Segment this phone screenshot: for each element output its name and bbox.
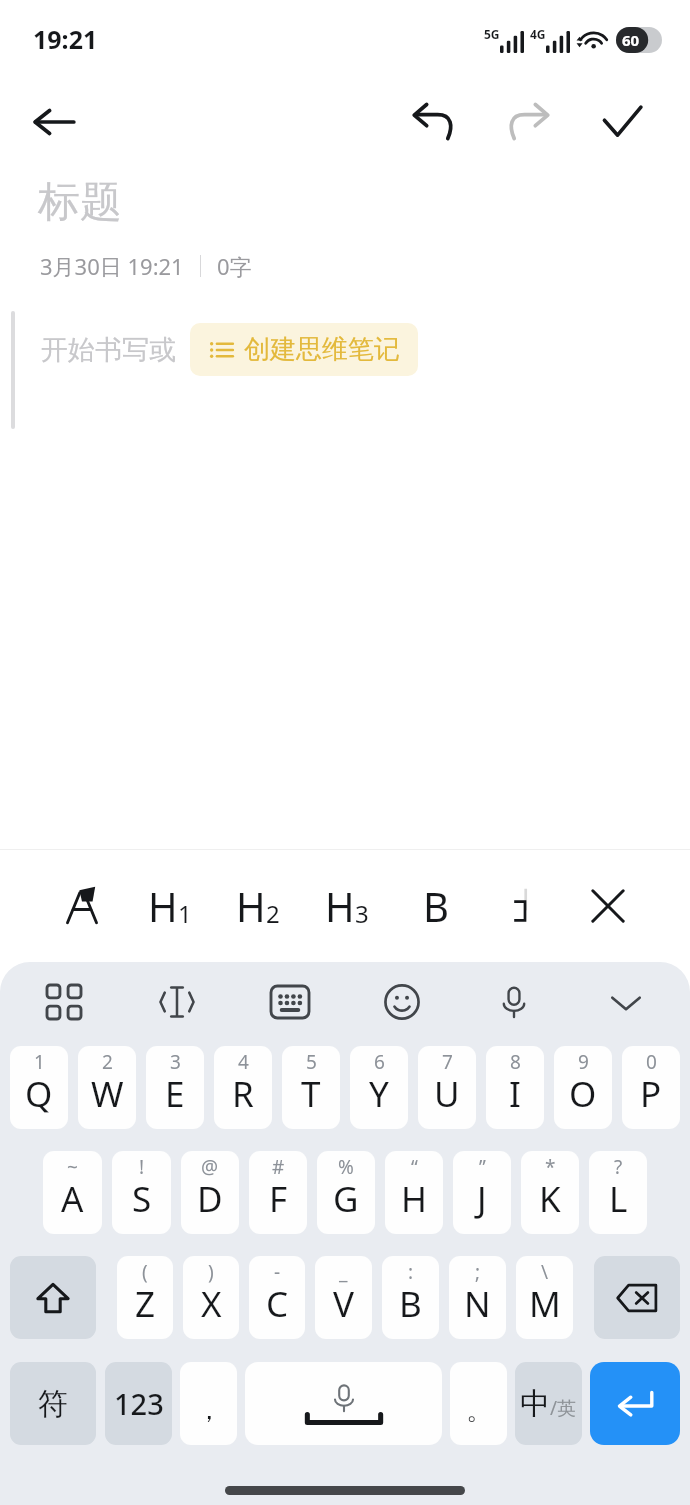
button[interactable]: Highlight	[44, 868, 120, 944]
button[interactable]: #	[249, 1151, 307, 1234]
button[interactable]: Text cursor	[145, 970, 209, 1034]
button[interactable]: 9	[554, 1046, 612, 1129]
button[interactable]: 8	[486, 1046, 544, 1129]
button[interactable]: @	[181, 1151, 239, 1234]
staticText: ”	[479, 1154, 486, 1180]
button[interactable]: Heading 3	[309, 868, 385, 944]
staticText: H	[325, 879, 355, 933]
button[interactable]: 0	[622, 1046, 680, 1129]
staticText: N	[464, 1280, 491, 1328]
staticText: _	[339, 1259, 348, 1285]
button[interactable]: Emoji	[370, 970, 434, 1034]
button[interactable]: Done	[586, 86, 658, 158]
staticText: P	[640, 1070, 662, 1118]
button[interactable]: *	[521, 1151, 579, 1234]
staticText: ~	[67, 1154, 78, 1180]
staticText: 123	[114, 1384, 164, 1423]
staticText: /英	[550, 1395, 577, 1421]
staticText: @	[201, 1154, 219, 1180]
staticText: 0	[646, 1049, 657, 1075]
staticText: T	[301, 1070, 321, 1118]
staticText: !	[139, 1154, 145, 1180]
staticText: (	[142, 1259, 148, 1285]
button[interactable]: 。	[450, 1362, 507, 1445]
button[interactable]: ，	[180, 1362, 237, 1445]
button[interactable]: Keyboard layout	[258, 970, 322, 1034]
button[interactable]: (	[117, 1256, 173, 1339]
button[interactable]: Enter	[590, 1362, 680, 1445]
staticText: E	[165, 1070, 185, 1118]
button[interactable]: Backspace	[594, 1256, 680, 1339]
button[interactable]: 7	[418, 1046, 476, 1129]
button[interactable]: Space	[245, 1362, 442, 1445]
staticText: G	[333, 1175, 359, 1223]
staticText: 创建思维笔记	[244, 333, 400, 366]
staticText: C	[266, 1280, 289, 1328]
staticText: 1	[178, 897, 192, 930]
button[interactable]: %	[317, 1151, 375, 1234]
staticText: Q	[25, 1070, 53, 1118]
button[interactable]: Back	[20, 88, 88, 156]
button[interactable]: -	[249, 1256, 305, 1339]
button[interactable]: Hide keyboard	[594, 970, 658, 1034]
staticText: H	[401, 1175, 427, 1223]
staticText: F	[269, 1175, 288, 1223]
staticText: H	[236, 879, 266, 933]
button[interactable]: ;	[449, 1256, 506, 1339]
button[interactable]: !	[112, 1151, 171, 1234]
staticText: M	[529, 1280, 561, 1328]
button[interactable]: Quote	[487, 868, 563, 944]
staticText: Y	[369, 1070, 389, 1118]
button[interactable]: ?	[589, 1151, 647, 1234]
button[interactable]: )	[183, 1256, 239, 1339]
staticText: ;	[475, 1259, 481, 1285]
button[interactable]: ”	[453, 1151, 511, 1234]
button[interactable]: :	[382, 1256, 439, 1339]
button[interactable]: Switch language	[515, 1362, 582, 1445]
button[interactable]: _	[315, 1256, 372, 1339]
button[interactable]: 5	[282, 1046, 340, 1129]
button[interactable]: Shift	[10, 1256, 96, 1339]
button[interactable]: 创建思维笔记	[190, 323, 418, 376]
staticText: J	[477, 1175, 487, 1223]
staticText: 1	[34, 1049, 45, 1075]
button[interactable]: “	[385, 1151, 443, 1234]
button[interactable]: Voice input	[482, 970, 546, 1034]
button[interactable]: \	[516, 1256, 573, 1339]
staticText: W	[91, 1070, 124, 1118]
button[interactable]: Apps	[32, 970, 96, 1034]
button[interactable]: 123	[105, 1362, 172, 1445]
staticText: B	[423, 879, 449, 933]
staticText: 3	[170, 1049, 181, 1075]
staticText: *	[545, 1154, 556, 1180]
button[interactable]: 3	[146, 1046, 204, 1129]
staticText: S	[132, 1175, 152, 1223]
staticText: Z	[135, 1280, 156, 1328]
button[interactable]: 2	[78, 1046, 136, 1129]
staticText: D	[197, 1175, 223, 1223]
button[interactable]: 6	[350, 1046, 408, 1129]
button[interactable]: 符	[10, 1362, 96, 1445]
staticText: A	[61, 1175, 84, 1223]
button[interactable]: Heading 1	[132, 868, 208, 944]
staticText: “	[411, 1154, 418, 1180]
staticText: 5	[306, 1049, 317, 1075]
staticText: ?	[614, 1154, 623, 1180]
button[interactable]: B	[398, 868, 474, 944]
button[interactable]: 1	[10, 1046, 68, 1129]
staticText: #	[272, 1154, 285, 1180]
button[interactable]: Close	[570, 868, 646, 944]
staticText: :	[408, 1259, 414, 1285]
staticText: 3	[355, 897, 369, 930]
button[interactable]: Undo	[398, 86, 470, 158]
staticText: 中	[520, 1385, 550, 1423]
staticText: %	[338, 1154, 354, 1180]
button[interactable]: Redo	[492, 86, 564, 158]
staticText: 60	[622, 30, 640, 50]
button[interactable]: Heading 2	[220, 868, 296, 944]
button[interactable]: 4	[214, 1046, 272, 1129]
button[interactable]: ~	[43, 1151, 102, 1234]
staticText: 2	[266, 897, 280, 930]
staticText: 4G	[530, 26, 546, 42]
staticText: R	[232, 1070, 254, 1118]
